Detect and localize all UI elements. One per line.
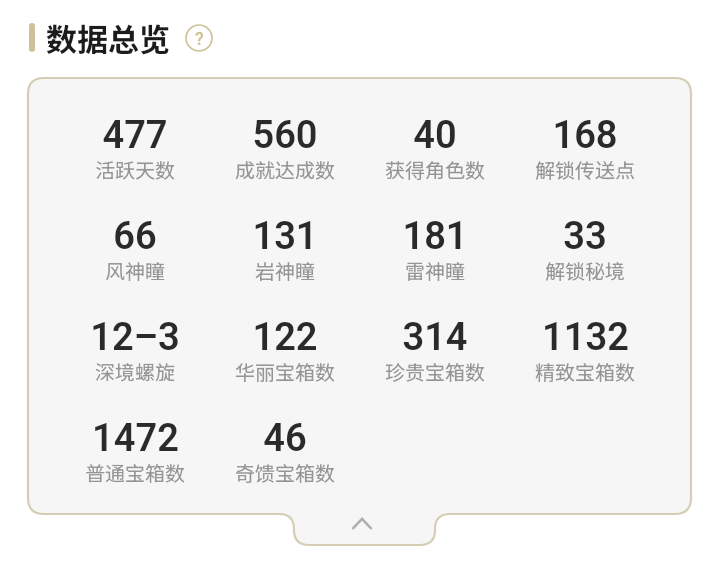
staticText: ? [195, 28, 204, 49]
staticText: 1132 [542, 315, 629, 360]
staticText: 岩神瞳 [255, 256, 315, 285]
staticText: 181 [402, 214, 468, 259]
staticText: 风神瞳 [105, 256, 165, 285]
staticText: 解锁传送点 [535, 155, 635, 184]
button[interactable]: 314 [363, 315, 507, 395]
button[interactable]: Collapse [294, 505, 435, 547]
staticText: 成就达成数 [235, 155, 335, 184]
staticText: 33 [563, 214, 607, 259]
staticText: 46 [263, 416, 307, 461]
staticText: 解锁秘境 [545, 256, 625, 285]
button[interactable]: 122 [213, 315, 357, 395]
staticText: 168 [552, 113, 618, 158]
button[interactable]: 66 [63, 214, 207, 294]
staticText: 12–3 [90, 315, 180, 360]
button[interactable]: 33 [513, 214, 657, 294]
staticText: 精致宝箱数 [535, 357, 635, 386]
staticText: 122 [252, 315, 318, 360]
button[interactable]: Help [185, 24, 213, 52]
button[interactable]: 1472 [63, 416, 207, 496]
button[interactable]: 12–3 [63, 315, 207, 395]
button[interactable]: 1132 [513, 315, 657, 395]
button[interactable]: 560 [213, 113, 357, 193]
staticText: 40 [413, 113, 457, 158]
staticText: 普通宝箱数 [85, 458, 185, 487]
button[interactable]: 40 [363, 113, 507, 193]
staticText: 560 [252, 113, 318, 158]
staticText: 获得角色数 [385, 155, 485, 184]
staticText: 314 [402, 315, 468, 360]
button[interactable]: 168 [513, 113, 657, 193]
staticText: 华丽宝箱数 [235, 357, 335, 386]
staticText: 1472 [92, 416, 179, 461]
staticText: 131 [252, 214, 318, 259]
staticText: 数据总览 [46, 15, 170, 60]
button[interactable]: 477 [63, 113, 207, 193]
staticText: 雷神瞳 [405, 256, 465, 285]
staticText: 深境螺旋 [95, 357, 175, 386]
staticText: 477 [102, 113, 168, 158]
button[interactable]: 131 [213, 214, 357, 294]
button[interactable]: 181 [363, 214, 507, 294]
staticText: 珍贵宝箱数 [385, 357, 485, 386]
staticText: 活跃天数 [95, 155, 175, 184]
button[interactable]: 46 [213, 416, 357, 496]
staticText: 奇馈宝箱数 [235, 458, 335, 487]
staticText: 66 [113, 214, 157, 259]
